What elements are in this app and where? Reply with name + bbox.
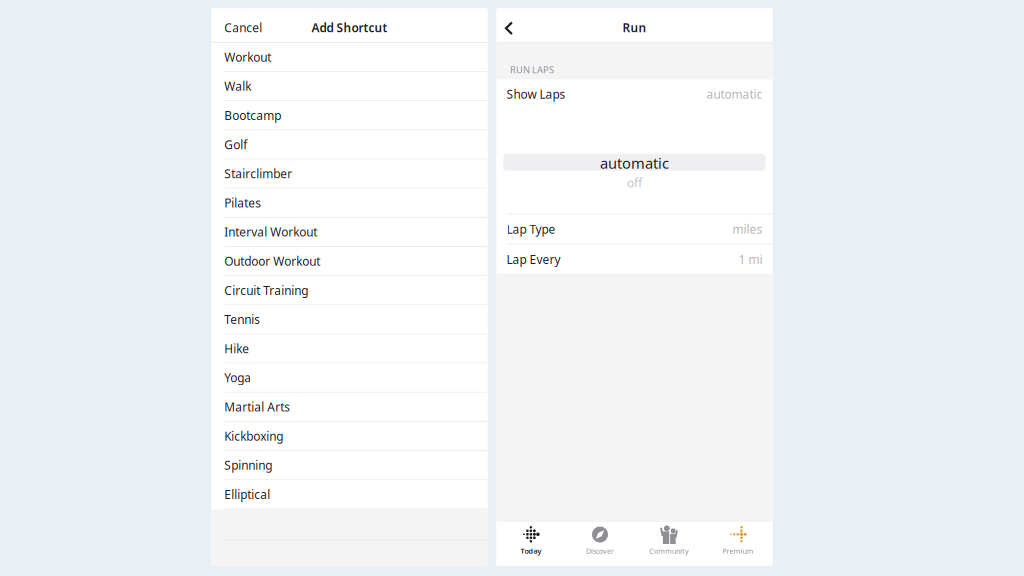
staticText: Yoga: [224, 370, 251, 386]
staticText: Elliptical: [224, 486, 270, 502]
staticText: automatic: [706, 86, 762, 102]
staticText: Circuit Training: [224, 282, 308, 298]
staticText: Tennis: [224, 311, 260, 327]
staticText: Spinning: [224, 457, 272, 473]
staticText: Show Laps: [506, 86, 565, 102]
staticText: Walk: [224, 78, 251, 94]
button[interactable]: Kickboxing: [211, 422, 487, 451]
staticText: Lap Every: [506, 251, 560, 267]
staticText: Bootcamp: [224, 107, 281, 123]
button[interactable]: Golf: [211, 130, 487, 159]
staticText: Today: [520, 546, 541, 556]
button[interactable]: Circuit Training: [211, 276, 487, 305]
button[interactable]: Community: [634, 522, 703, 565]
staticText: Stairclimber: [224, 166, 292, 182]
staticText: Add Shortcut: [311, 20, 387, 36]
staticText: Hike: [224, 340, 249, 357]
button[interactable]: Spinning: [211, 451, 487, 480]
staticText: Martial Arts: [224, 399, 290, 415]
staticText: Discover: [586, 546, 614, 556]
button[interactable]: Show Laps: [496, 79, 772, 109]
staticText: 1 mi: [738, 251, 762, 267]
button[interactable]: Cancel: [211, 8, 275, 42]
button[interactable]: Workout: [211, 43, 487, 72]
button[interactable]: Lap Every: [496, 245, 772, 274]
button[interactable]: Pilates: [211, 189, 487, 218]
staticText: Lap Type: [506, 221, 555, 237]
button[interactable]: Hike: [211, 334, 487, 364]
button[interactable]: Back: [497, 8, 521, 42]
staticText: Premium: [722, 546, 753, 556]
staticText: off: [627, 175, 642, 191]
staticText: Outdoor Workout: [224, 253, 320, 269]
staticText: miles: [732, 221, 762, 237]
button[interactable]: Bootcamp: [211, 101, 487, 130]
staticText: automatic: [600, 153, 669, 173]
button[interactable]: Outdoor Workout: [211, 247, 487, 276]
staticText: Community: [649, 546, 689, 556]
button[interactable]: automatic: [496, 154, 772, 171]
button[interactable]: Interval Workout: [211, 218, 487, 247]
button[interactable]: Today: [496, 522, 565, 565]
staticText: Workout: [224, 49, 271, 65]
button[interactable]: Elliptical: [211, 480, 487, 509]
staticText: Golf: [224, 136, 247, 153]
staticText: Kickboxing: [224, 428, 283, 444]
button[interactable]: Tennis: [211, 305, 487, 334]
staticText: RUN LAPS: [510, 63, 554, 76]
button[interactable]: Martial Arts: [211, 393, 487, 422]
staticText: Run: [622, 20, 646, 36]
button[interactable]: Walk: [211, 72, 487, 101]
button[interactable]: Stairclimber: [211, 160, 487, 189]
staticText: Interval Workout: [224, 224, 317, 240]
button[interactable]: Discover: [565, 522, 634, 565]
button[interactable]: Yoga: [211, 364, 487, 393]
staticText: Cancel: [224, 20, 262, 36]
button[interactable]: Premium: [703, 522, 772, 565]
staticText: Pilates: [224, 195, 261, 211]
button[interactable]: Lap Type: [496, 215, 772, 244]
